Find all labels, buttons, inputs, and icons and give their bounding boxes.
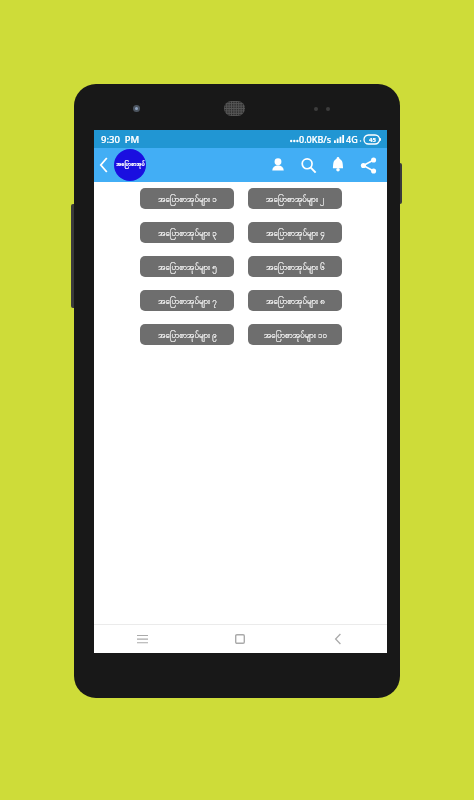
button[interactable]: Share [353, 148, 383, 182]
staticText: အပြောစာအုပ်များ ၅ [158, 261, 217, 273]
button[interactable]: Search [293, 148, 323, 182]
button[interactable]: အပြောစာအုပ်များ ၄ [248, 222, 342, 243]
button[interactable]: Back [94, 148, 114, 182]
button[interactable]: အပြောစာအုပ်များ ၉ [140, 324, 234, 345]
button[interactable]: အပြောစာအုပ်များ ၈ [248, 290, 342, 311]
staticText: အပြောစာအုပ်များ ၂ [266, 193, 324, 205]
button[interactable]: Profile [263, 148, 293, 182]
staticText: အပြောစာအုပ်များ ၉ [158, 329, 217, 341]
staticText: အပြောစာအုပ်များ ၁၀ [264, 329, 327, 341]
staticText: 9:30 PM [101, 133, 140, 146]
staticText: 4G [346, 133, 358, 145]
staticText: အပြောစာအုပ်များ ၈ [266, 295, 325, 307]
staticText: အပြောစာအုပ်များ ၆ [266, 261, 325, 273]
button[interactable]: Logo [114, 149, 146, 181]
button[interactable]: Recent apps [94, 624, 191, 653]
button[interactable]: Back [289, 624, 387, 653]
staticText: အပြောစာအုပ်များ ၁ [158, 193, 217, 205]
button[interactable]: အပြောစာအုပ်များ ၇ [140, 290, 234, 311]
button[interactable]: အပြောစာအုပ်များ ၆ [248, 256, 342, 277]
button[interactable]: အပြောစာအုပ်များ ၁ [140, 188, 234, 209]
staticText: အပြောစာအုပ်များ ၇ [158, 295, 217, 307]
staticText: အပြောစာအုပ် [116, 161, 145, 169]
button[interactable]: Notifications [323, 148, 353, 182]
staticText: 0.0KB/s [299, 133, 332, 145]
button[interactable]: အပြောစာအုပ်များ ၁၀ [248, 324, 342, 345]
button[interactable]: အပြောစာအုပ်များ ၅ [140, 256, 234, 277]
button[interactable]: အပြောစာအုပ်များ ၂ [248, 188, 342, 209]
button[interactable]: Home [191, 624, 289, 653]
button[interactable]: အပြောစာအုပ်များ ၃ [140, 222, 234, 243]
staticText: 45 [369, 136, 376, 144]
staticText: အပြောစာအုပ်များ ၄ [266, 227, 325, 239]
staticText: အပြောစာအုပ်များ ၃ [158, 227, 217, 239]
